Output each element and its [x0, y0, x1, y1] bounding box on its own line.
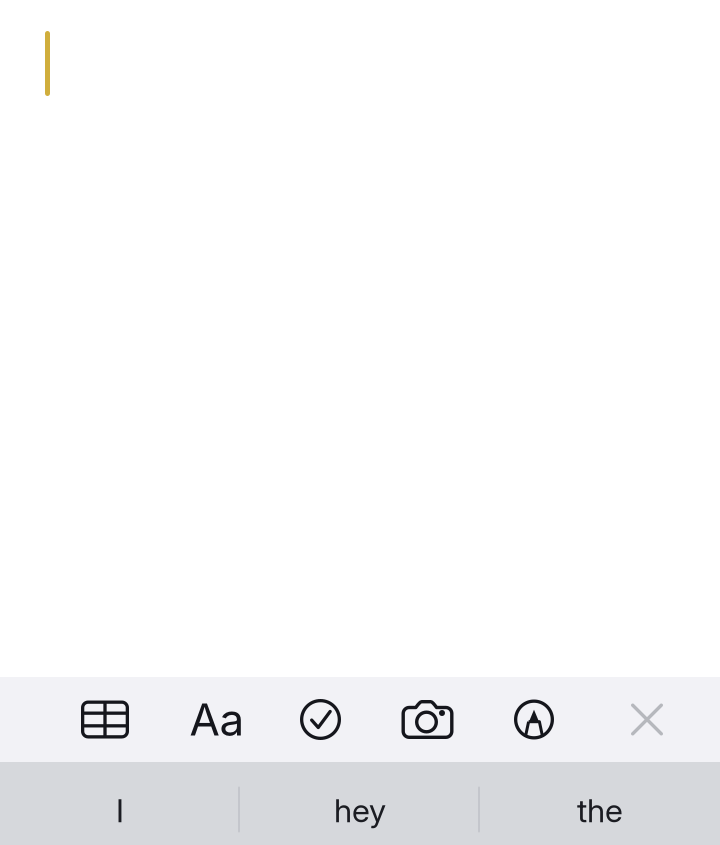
button[interactable]: I: [0, 762, 240, 845]
staticText: the: [577, 791, 623, 830]
button[interactable]: Format: [167, 677, 263, 762]
button[interactable]: Hide keyboard: [599, 677, 695, 762]
staticText: I: [116, 791, 124, 830]
button[interactable]: Table: [57, 677, 153, 762]
staticText: Aa: [189, 693, 244, 746]
button[interactable]: the: [480, 762, 720, 845]
button[interactable]: Markup: [486, 677, 582, 762]
button[interactable]: Checklist: [272, 677, 368, 762]
staticText: hey: [334, 791, 386, 830]
button[interactable]: hey: [240, 762, 480, 845]
button[interactable]: Insert photo: [379, 677, 475, 762]
